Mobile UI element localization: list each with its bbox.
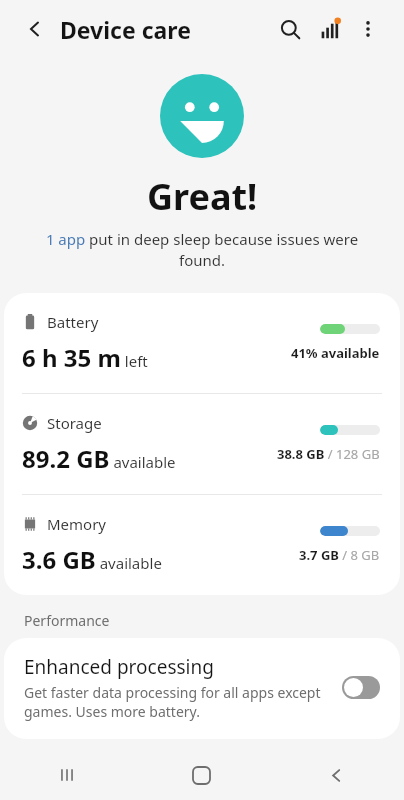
button[interactable]: Home — [134, 750, 269, 800]
staticText: Enhanced processing — [24, 654, 214, 680]
button[interactable]: Search — [270, 9, 310, 49]
staticText: Device care — [60, 14, 191, 45]
button[interactable]: Battery — [4, 293, 400, 393]
button[interactable]: Enhanced processing — [4, 638, 400, 739]
button[interactable]: Back — [269, 750, 404, 800]
staticText: Memory — [47, 514, 107, 534]
staticText: Performance — [24, 611, 110, 630]
button[interactable]: Enhanced processing toggle — [342, 676, 380, 699]
staticText: 38.8 GB / 128 GB — [277, 445, 380, 463]
button[interactable]: Storage — [4, 394, 400, 494]
staticText: Get faster data processing for all apps … — [24, 683, 332, 721]
button[interactable]: Diagnostics — [310, 9, 350, 49]
staticText: 89.2 GB available — [22, 442, 176, 475]
button[interactable]: Memory — [4, 495, 400, 595]
staticText: 1 app put in deep sleep because issues w… — [22, 229, 382, 271]
button[interactable]: Recents — [0, 750, 134, 800]
staticText: 3.6 GB available — [22, 543, 162, 576]
staticText: Storage — [47, 413, 102, 433]
staticText: Battery — [47, 312, 99, 332]
staticText: 6 h 35 m left — [22, 341, 148, 374]
staticText: 41% available — [291, 344, 380, 362]
button[interactable]: More options — [350, 11, 386, 47]
button[interactable]: Back — [18, 12, 52, 46]
staticText: 3.7 GB / 8 GB — [299, 546, 380, 564]
staticText: Great! — [147, 172, 258, 221]
